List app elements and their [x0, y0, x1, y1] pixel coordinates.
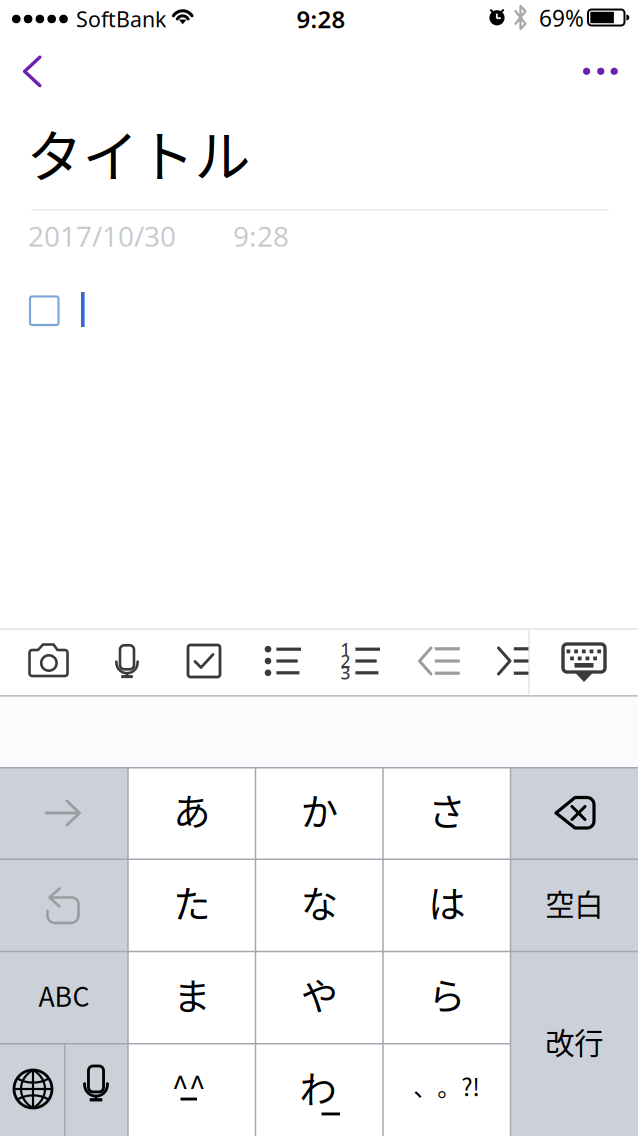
button[interactable]: な — [0, 0, 638, 1136]
button[interactable]: Increase indent — [0, 0, 638, 1136]
staticText: は — [428, 875, 465, 929]
staticText: 69% — [539, 3, 584, 33]
button[interactable]: 、。?! — [0, 0, 638, 1136]
button[interactable]: Hide keyboard — [0, 0, 638, 1136]
staticText: 9:28 — [296, 3, 345, 35]
button[interactable]: Next keyboard — [0, 0, 638, 1136]
button[interactable]: 空白 — [0, 0, 638, 1136]
button[interactable]: は — [0, 0, 638, 1136]
button[interactable]: た — [0, 0, 638, 1136]
button[interactable]: あ — [0, 0, 638, 1136]
staticText: ABC — [38, 976, 89, 1014]
button[interactable]: Numbered list — [0, 0, 638, 1136]
button[interactable]: か — [0, 0, 638, 1136]
button[interactable]: Next — [0, 0, 638, 1136]
staticText: あ — [173, 783, 210, 837]
staticText: 1 — [340, 638, 350, 661]
button[interactable]: Bulleted list — [0, 0, 638, 1136]
button[interactable]: Dictate — [0, 0, 638, 1136]
button[interactable]: More options — [0, 0, 638, 1136]
button[interactable]: Decrease indent — [0, 0, 638, 1136]
staticText: た — [173, 875, 210, 929]
button[interactable]: や — [0, 0, 638, 1136]
staticText: ^^ — [172, 1063, 206, 1108]
staticText: 3 — [340, 661, 350, 684]
button[interactable]: さ — [0, 0, 638, 1136]
staticText: 2017/10/30 — [28, 217, 176, 255]
button[interactable]: Checklist — [0, 0, 638, 1136]
staticText: ら — [428, 967, 465, 1021]
button[interactable]: 改行 — [0, 0, 638, 1136]
staticText: わ — [299, 1060, 336, 1115]
button[interactable]: Undo — [0, 0, 638, 1136]
staticText: 2 — [340, 649, 350, 672]
button[interactable]: ま — [0, 0, 638, 1136]
button[interactable]: Back — [0, 0, 638, 1136]
button[interactable]: Dictation — [0, 0, 638, 1136]
staticText: か — [301, 783, 338, 837]
staticText: ま — [173, 967, 210, 1021]
staticText: さ — [428, 783, 465, 837]
button[interactable]: Emoticon — [0, 0, 638, 1136]
staticText: 改行 — [545, 1020, 603, 1062]
button[interactable]: ら — [0, 0, 638, 1136]
staticText: や — [301, 967, 338, 1021]
staticText: 、。?! — [413, 1068, 480, 1103]
staticText: 9:28 — [233, 217, 289, 255]
staticText: SoftBank — [76, 5, 166, 33]
staticText: 空白 — [545, 882, 603, 924]
button[interactable]: Insert photo — [0, 0, 638, 1136]
button[interactable]: わ — [0, 0, 638, 1136]
button[interactable]: ABC — [0, 0, 638, 1136]
button[interactable]: Delete — [0, 0, 638, 1136]
staticText: タイトル — [26, 112, 250, 193]
staticText: な — [301, 875, 338, 929]
